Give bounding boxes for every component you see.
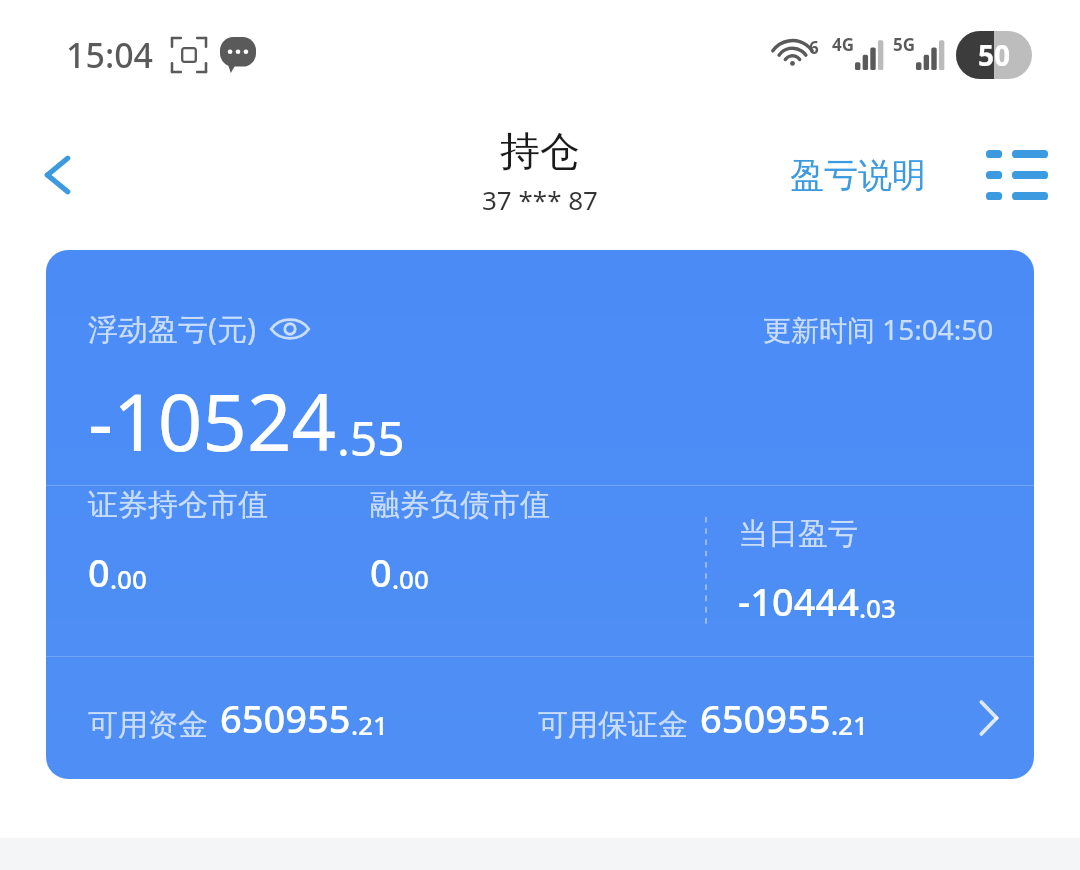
staticText: 650955 xyxy=(700,692,831,744)
staticText: 证券持仓市值 xyxy=(88,486,268,524)
staticText: .03 xyxy=(859,590,896,625)
staticText: .00 xyxy=(110,561,147,596)
staticText: 37 *** 87 xyxy=(482,182,598,217)
staticText: 更新时间 15:04:50 xyxy=(763,310,994,348)
staticText: -10444 xyxy=(738,575,859,627)
staticText: 盈亏说明 xyxy=(790,154,926,197)
staticText: 4G xyxy=(832,33,855,56)
button[interactable]: List menu xyxy=(982,140,1052,210)
staticText: 650955 xyxy=(220,692,351,744)
staticText: -10524 xyxy=(88,368,337,474)
button[interactable]: 可用资金 xyxy=(46,657,1034,779)
staticText: 可用资金 xyxy=(88,706,208,744)
staticText: 5G xyxy=(893,33,916,56)
staticText: 0 xyxy=(370,546,392,598)
button[interactable]: 浮动盈亏(元) xyxy=(88,308,310,349)
staticText: .21 xyxy=(351,707,388,742)
other: More details xyxy=(978,699,1000,737)
staticText: .21 xyxy=(831,707,868,742)
staticText: 0 xyxy=(88,546,110,598)
staticText: 融券负债市值 xyxy=(370,486,550,524)
staticText: 当日盈亏 xyxy=(738,515,858,553)
other: Toggle visibility xyxy=(270,316,310,342)
staticText: 持仓 xyxy=(500,126,580,176)
staticText: 可用保证金 xyxy=(538,706,688,744)
button[interactable]: 盈亏说明 xyxy=(784,144,932,207)
button[interactable]: Back xyxy=(20,137,96,213)
staticText: .00 xyxy=(392,561,429,596)
staticText: .55 xyxy=(337,405,405,470)
staticText: 15:04 xyxy=(66,32,154,78)
staticText: 6 xyxy=(809,36,819,59)
staticText: 50 xyxy=(978,36,1011,74)
staticText: 浮动盈亏(元) xyxy=(88,308,256,349)
